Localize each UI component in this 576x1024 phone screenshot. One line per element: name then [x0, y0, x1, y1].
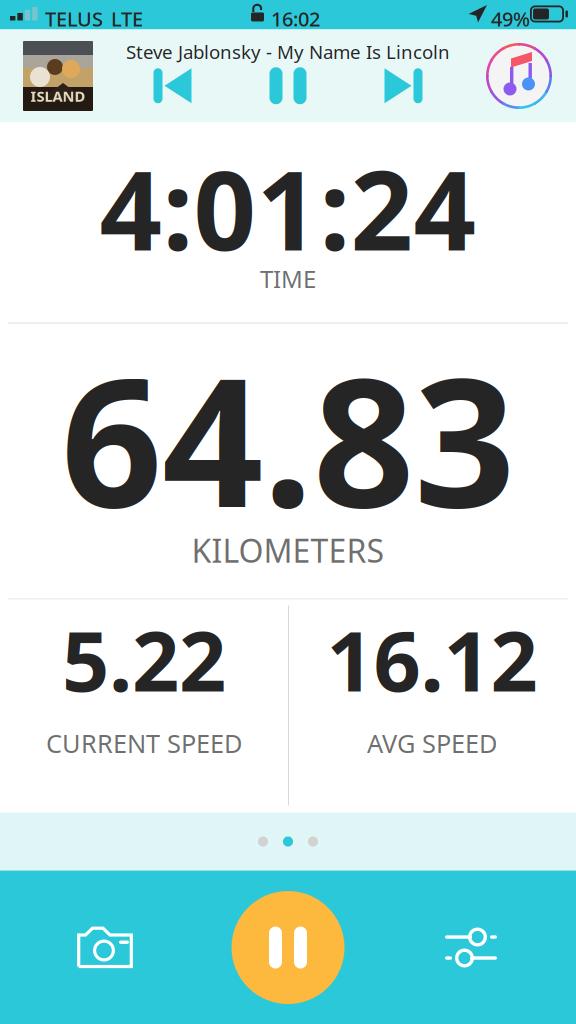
staticText: AVG SPEED: [367, 726, 497, 760]
button[interactable]: Settings: [416, 902, 526, 992]
staticText: KILOMETERS: [191, 529, 384, 571]
button[interactable]: Open in iTunes: [486, 43, 552, 109]
staticText: 49%: [491, 5, 530, 32]
button[interactable]: Previous track: [153, 68, 191, 103]
staticText: 64.83: [61, 320, 515, 556]
button[interactable]: Pause workout: [231, 891, 344, 1004]
staticText: LTE: [111, 5, 143, 32]
button[interactable]: Camera: [50, 902, 160, 992]
staticText: 16:02: [271, 5, 320, 32]
staticText: TIME: [260, 263, 316, 295]
staticText: 5.22: [62, 604, 226, 714]
button[interactable]: Next track: [384, 68, 422, 103]
staticText: 4:01:24: [99, 135, 476, 281]
staticText: CURRENT SPEED: [46, 726, 242, 760]
staticText: Steve Jablonsky - My Name Is Lincoln: [126, 39, 450, 64]
staticText: 16.12: [326, 604, 537, 714]
staticText: ISLAND: [30, 86, 85, 106]
staticText: TELUS: [45, 5, 103, 32]
button[interactable]: Pause: [269, 67, 306, 104]
